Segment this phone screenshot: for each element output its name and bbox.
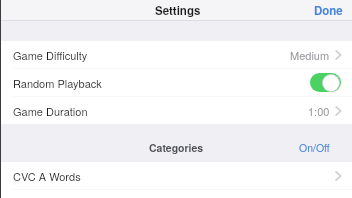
button[interactable]: Done: [303, 0, 352, 20]
button[interactable]: On/Off: [289, 132, 352, 162]
staticText: 1:00: [308, 103, 330, 119]
staticText: Random Playback: [13, 75, 102, 91]
staticText: On/Off: [299, 140, 330, 155]
staticText: Categories: [149, 140, 204, 155]
staticText: CVC A Words: [13, 168, 81, 184]
button[interactable]: Game Difficulty: [0, 41, 352, 68]
staticText: Settings: [155, 2, 201, 18]
button[interactable]: Random Playback: [0, 69, 352, 96]
staticText: Medium: [290, 47, 330, 63]
button[interactable]: Game Duration: [0, 97, 352, 124]
staticText: Done: [314, 2, 343, 18]
other: Random Playback toggle, on: [310, 73, 341, 92]
staticText: Game Difficulty: [13, 47, 88, 63]
button[interactable]: CVC A Words: [0, 162, 352, 189]
staticText: Game Duration: [13, 103, 88, 119]
